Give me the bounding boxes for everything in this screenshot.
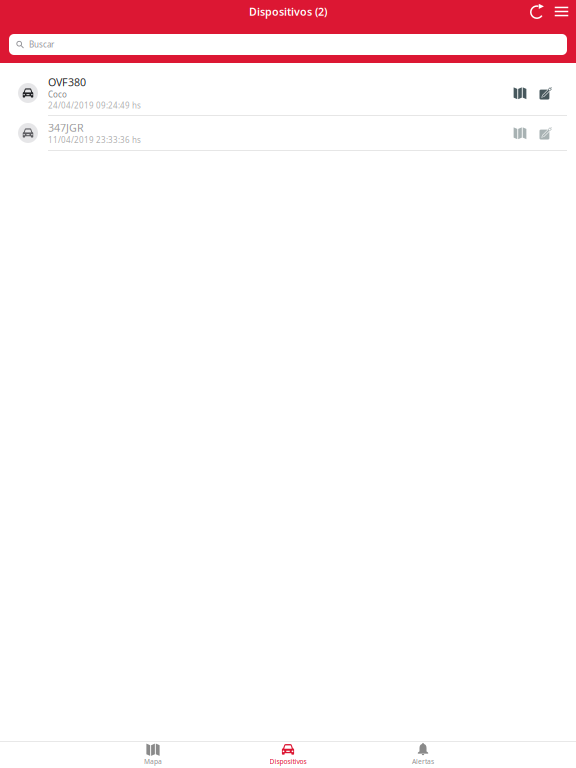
staticText: 24/04/2019 09:24:49 hs: [48, 100, 141, 111]
button[interactable]: Editar: [533, 120, 559, 146]
staticText: OVF380: [48, 75, 86, 89]
button[interactable]: Ver en el mapa: [507, 80, 533, 106]
staticText: Mapa: [144, 757, 162, 766]
button[interactable]: Buscar: [0, 34, 576, 55]
staticText: Alertas: [412, 757, 434, 766]
button[interactable]: Ver en el mapa: [507, 120, 533, 146]
button[interactable]: Editar: [533, 80, 559, 106]
button[interactable]: Actualizar: [526, 0, 549, 23]
staticText: Buscar: [29, 39, 54, 50]
button[interactable]: Alertas: [355, 741, 490, 768]
staticText: Dispositivos: [269, 757, 306, 766]
staticText: 347JGR: [48, 120, 84, 135]
button[interactable]: Mapa: [85, 741, 220, 768]
button[interactable]: Menú: [550, 0, 573, 23]
staticText: 11/04/2019 23:33:36 hs: [48, 135, 141, 145]
button[interactable]: Dispositivos: [220, 741, 355, 768]
staticText: Coco: [48, 89, 67, 100]
staticText: Dispositivos (2): [249, 4, 327, 19]
